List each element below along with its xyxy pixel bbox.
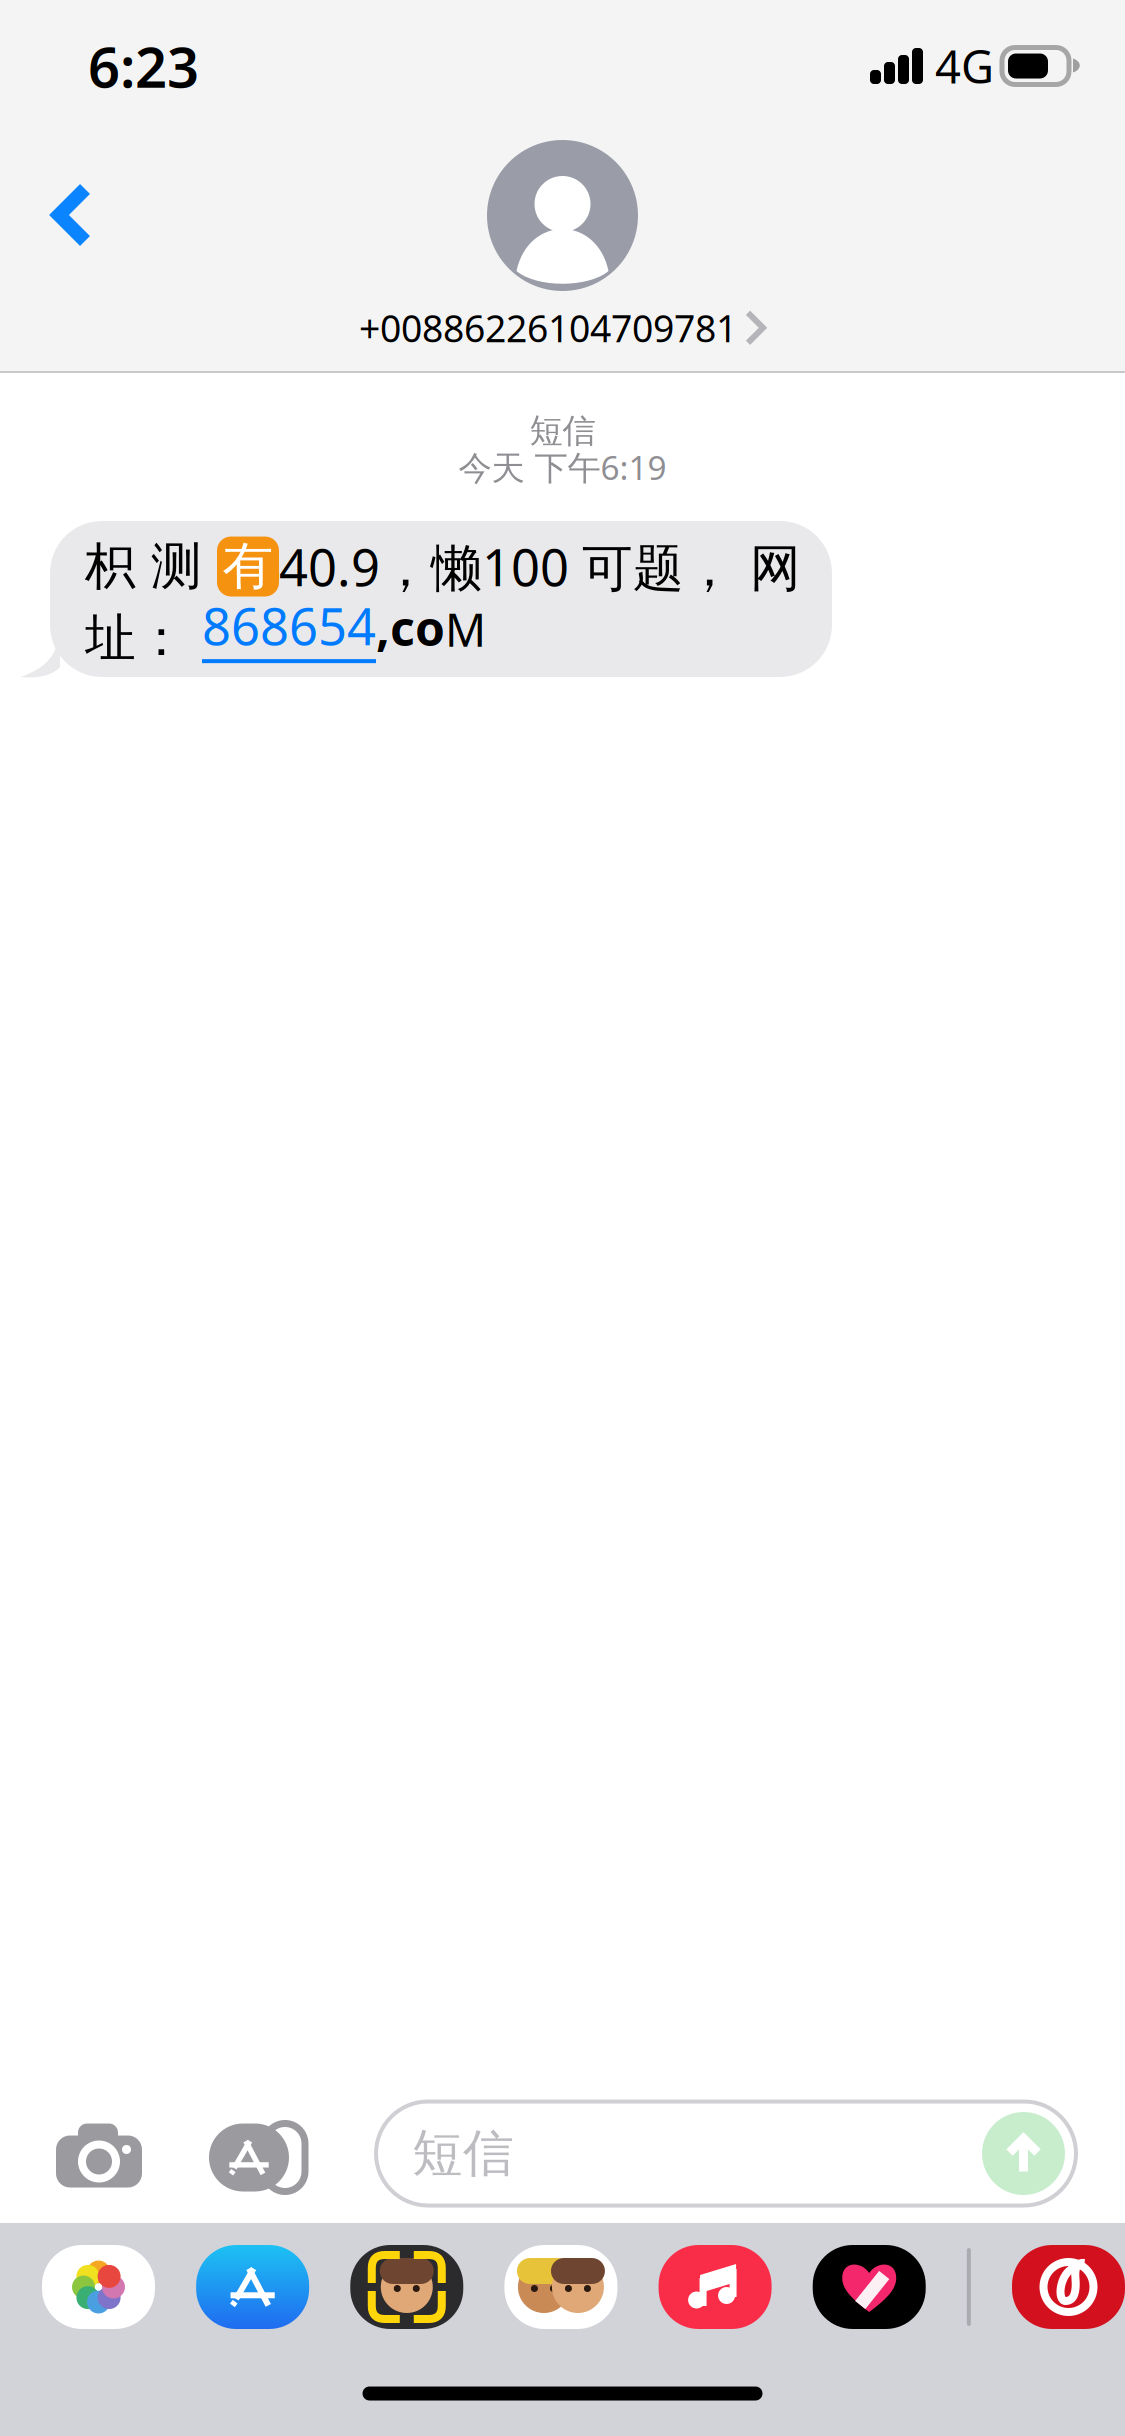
button[interactable]: Fitness xyxy=(813,2245,926,2329)
button[interactable]: NetEase Cloud Music xyxy=(1012,2245,1125,2329)
staticText: 有 xyxy=(222,535,273,598)
button[interactable]: Camera xyxy=(36,2079,162,2198)
staticText: 枳 测 xyxy=(85,535,217,598)
staticText: ,co xyxy=(376,595,445,659)
staticText: 短信 xyxy=(412,2122,514,2185)
staticText: 40.9，懒100 可题， 网 xyxy=(279,533,801,600)
button[interactable]: 短信 xyxy=(376,2101,1076,2198)
button[interactable]: Memoji Stickers xyxy=(350,2245,463,2329)
button[interactable]: Apps xyxy=(162,2083,319,2198)
button[interactable]: Photos xyxy=(42,2245,155,2329)
button[interactable]: Music xyxy=(659,2245,772,2329)
staticText: 6:23 xyxy=(88,29,199,103)
staticText: M xyxy=(445,599,486,659)
staticText: 今天 下午6:19 xyxy=(458,445,666,489)
staticText: 短信 xyxy=(529,410,595,451)
button[interactable]: Memoji xyxy=(504,2245,617,2329)
staticText: 4G xyxy=(935,36,994,96)
staticText: 址： xyxy=(85,607,202,669)
button[interactable]: Back xyxy=(0,132,125,274)
button[interactable]: +00886226104709781 xyxy=(359,140,766,353)
staticText: 868654 xyxy=(202,592,376,659)
staticText: +00886226104709781 xyxy=(359,303,737,353)
button[interactable]: App Store xyxy=(196,2245,309,2329)
